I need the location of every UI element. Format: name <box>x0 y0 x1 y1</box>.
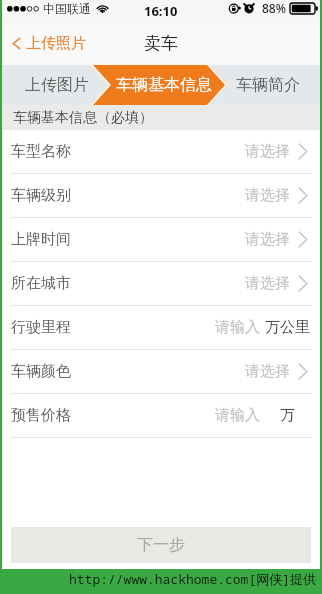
button[interactable]: 下一步 <box>11 527 311 563</box>
staticText: 下一步 <box>137 535 185 555</box>
staticText: 万公里 <box>265 318 310 337</box>
staticText: 车辆基本信息（必填） <box>13 109 153 127</box>
staticText: 16:10 <box>144 2 178 20</box>
staticText: 上传图片 <box>25 75 89 95</box>
staticText: 万 <box>280 406 295 425</box>
button[interactable]: 预售价格 <box>2 394 320 438</box>
staticText: 车辆颜色 <box>11 362 71 381</box>
button[interactable]: 行驶里程 <box>2 306 320 350</box>
staticText: 请输入 <box>215 318 260 337</box>
staticText: 88% <box>262 0 286 16</box>
staticText: 上牌时间 <box>11 230 71 249</box>
staticText: 卖车 <box>144 33 178 54</box>
staticText: 上传照片 <box>26 34 86 53</box>
staticText: 车辆级别 <box>11 186 71 205</box>
button[interactable]: 上牌时间 <box>2 218 320 262</box>
staticText: 所在城市 <box>11 274 71 293</box>
staticText: http://www.hackhome.com[网侠]提供 <box>69 570 317 588</box>
button[interactable]: 所在城市 <box>2 262 320 306</box>
staticText: 请选择 <box>245 186 290 205</box>
staticText: 预售价格 <box>11 406 71 425</box>
button[interactable]: 车辆基本信息 <box>112 65 216 105</box>
button[interactable]: 车辆级别 <box>2 174 320 218</box>
staticText: 请选择 <box>245 142 290 161</box>
staticText: 请选择 <box>245 230 290 249</box>
staticText: 车型名称 <box>11 142 71 161</box>
staticText: 请输入 <box>215 406 260 425</box>
staticText: 请选择 <box>245 274 290 293</box>
button[interactable]: 上传照片 <box>12 22 140 65</box>
staticText: 请选择 <box>245 362 290 381</box>
staticText: 车辆简介 <box>236 75 300 95</box>
staticText: 行驶里程 <box>11 318 71 337</box>
button[interactable]: 车辆简介 <box>216 65 320 105</box>
button[interactable]: 车型名称 <box>2 130 320 174</box>
button[interactable]: 车辆颜色 <box>2 350 320 394</box>
staticText: 中国联通 <box>43 1 91 16</box>
staticText: 车辆基本信息 <box>116 75 212 95</box>
button[interactable]: 上传图片 <box>2 65 112 105</box>
